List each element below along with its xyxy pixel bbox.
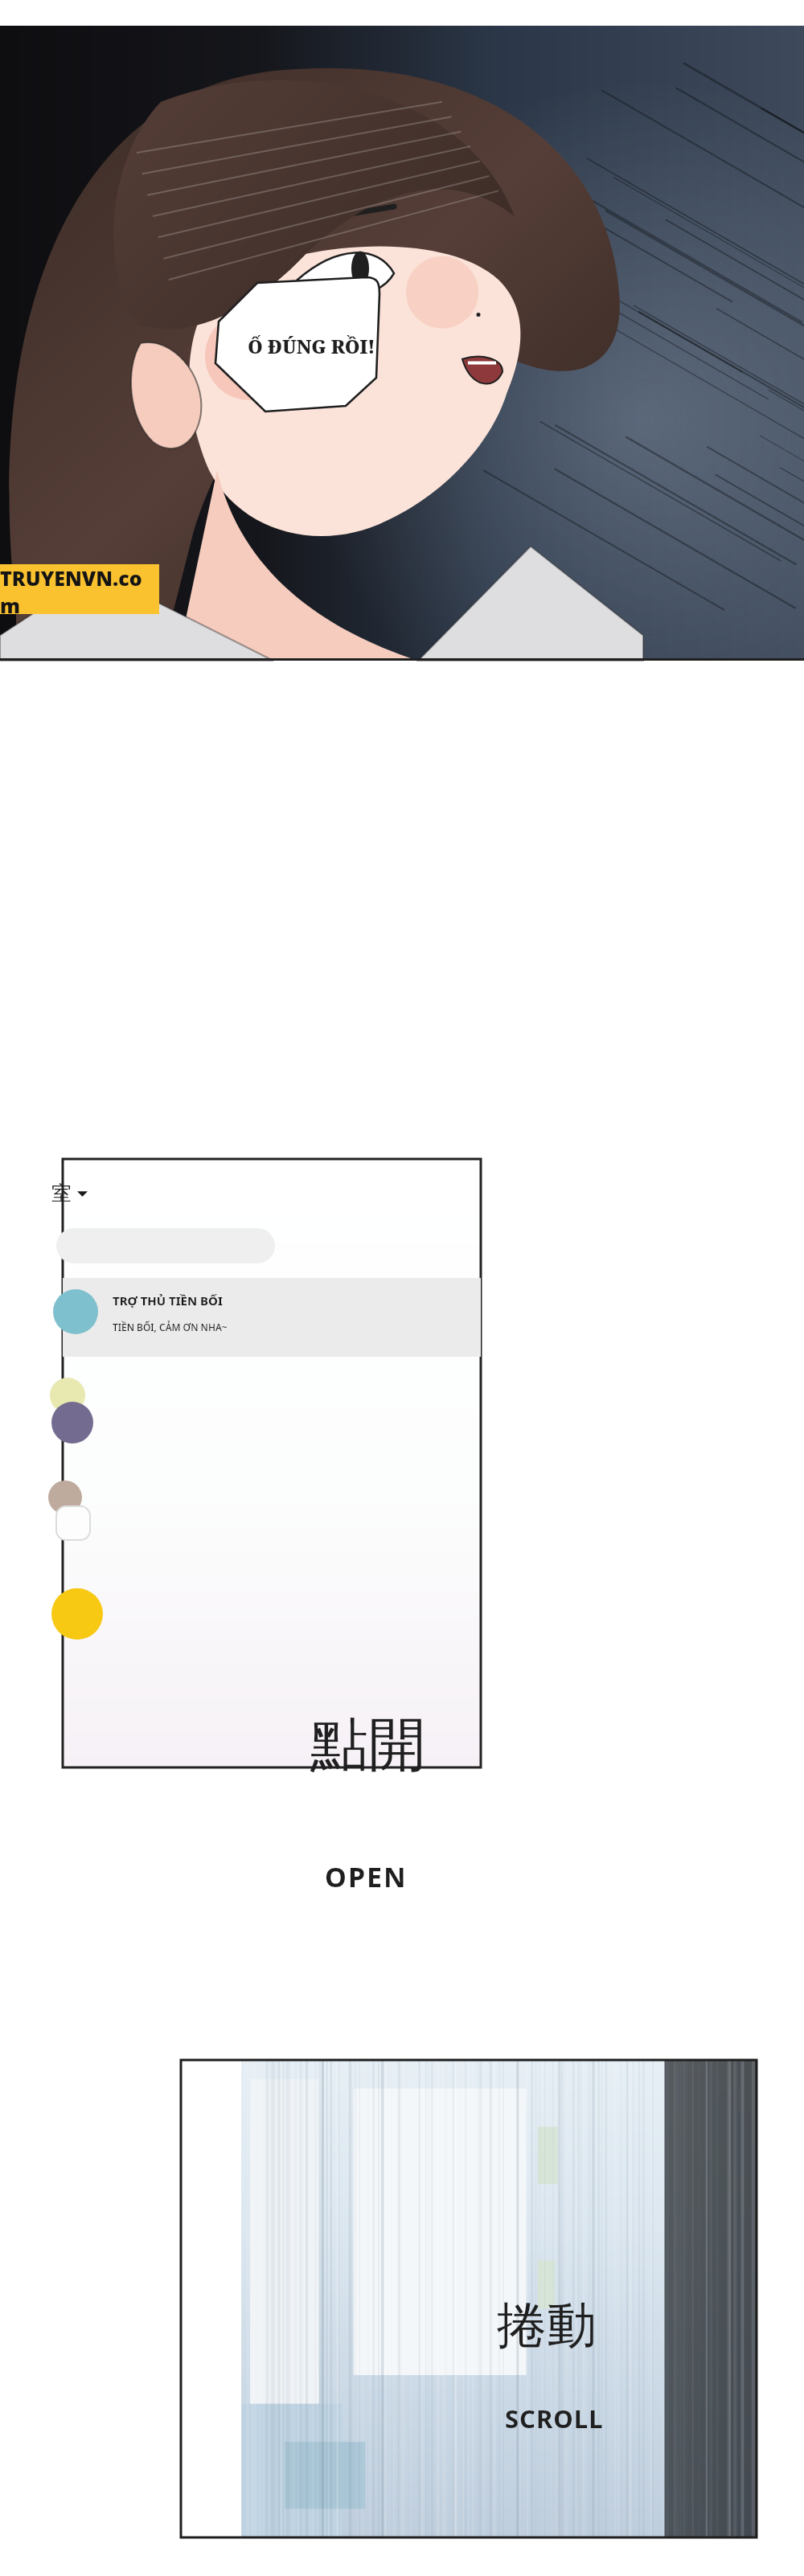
staticText: TRUYENVN.com xyxy=(0,564,159,614)
button[interactable]: 室 xyxy=(63,1159,481,1767)
staticText: SCROLL xyxy=(505,2402,604,2435)
other: Expand xyxy=(77,1188,88,1198)
staticText: Ố ĐÚNG RỒI! xyxy=(219,334,404,358)
button[interactable]: TRỢ THỦ TIỀN BỐI xyxy=(63,1278,481,1357)
button[interactable]: TRUYENVN.com xyxy=(0,564,159,614)
button[interactable] xyxy=(63,1480,481,1569)
button[interactable] xyxy=(63,1378,481,1426)
staticText: OPEN xyxy=(325,1858,408,1895)
button[interactable]: 室 xyxy=(51,1175,88,1210)
staticText: 室 xyxy=(51,1181,72,1206)
button[interactable]: Search xyxy=(56,1228,275,1263)
staticText: TRỢ THỦ TIỀN BỐI xyxy=(113,1292,223,1308)
button[interactable] xyxy=(63,1583,481,1672)
staticText: TIỀN BỐI, CẢM ƠN NHA~ xyxy=(113,1321,228,1333)
button[interactable] xyxy=(63,1400,481,1472)
staticText: 點開 xyxy=(310,1709,426,1782)
staticText: 捲動 xyxy=(497,2294,597,2357)
